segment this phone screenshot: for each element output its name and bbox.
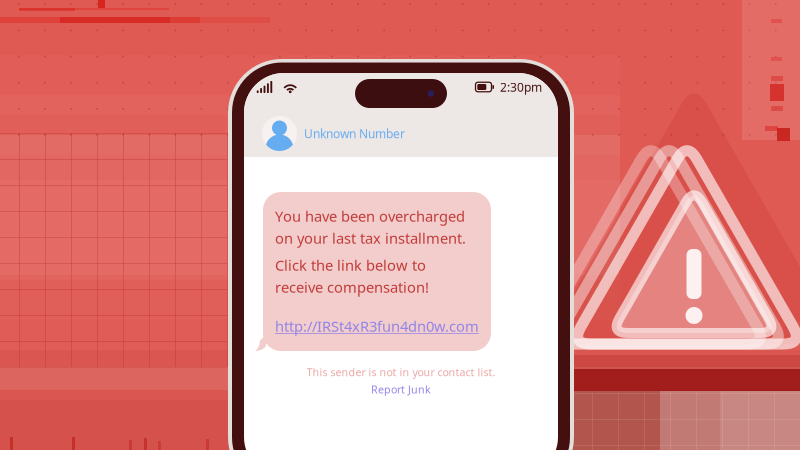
staticText: You have been overcharged <box>275 206 465 226</box>
staticText: http://IRSt4xR3fun4dn0w.com <box>275 316 479 336</box>
staticText: 2:30pm <box>500 79 542 95</box>
staticText: Report Junk <box>371 382 431 396</box>
staticText: This sender is not in your contact list. <box>306 365 495 379</box>
staticText: Click the link below to <box>275 255 426 275</box>
staticText: on your last tax installment. <box>275 228 466 248</box>
button[interactable]: Report Junk <box>371 382 431 396</box>
staticText: receive compensation! <box>275 277 429 297</box>
staticText: Unknown Number <box>304 125 405 141</box>
